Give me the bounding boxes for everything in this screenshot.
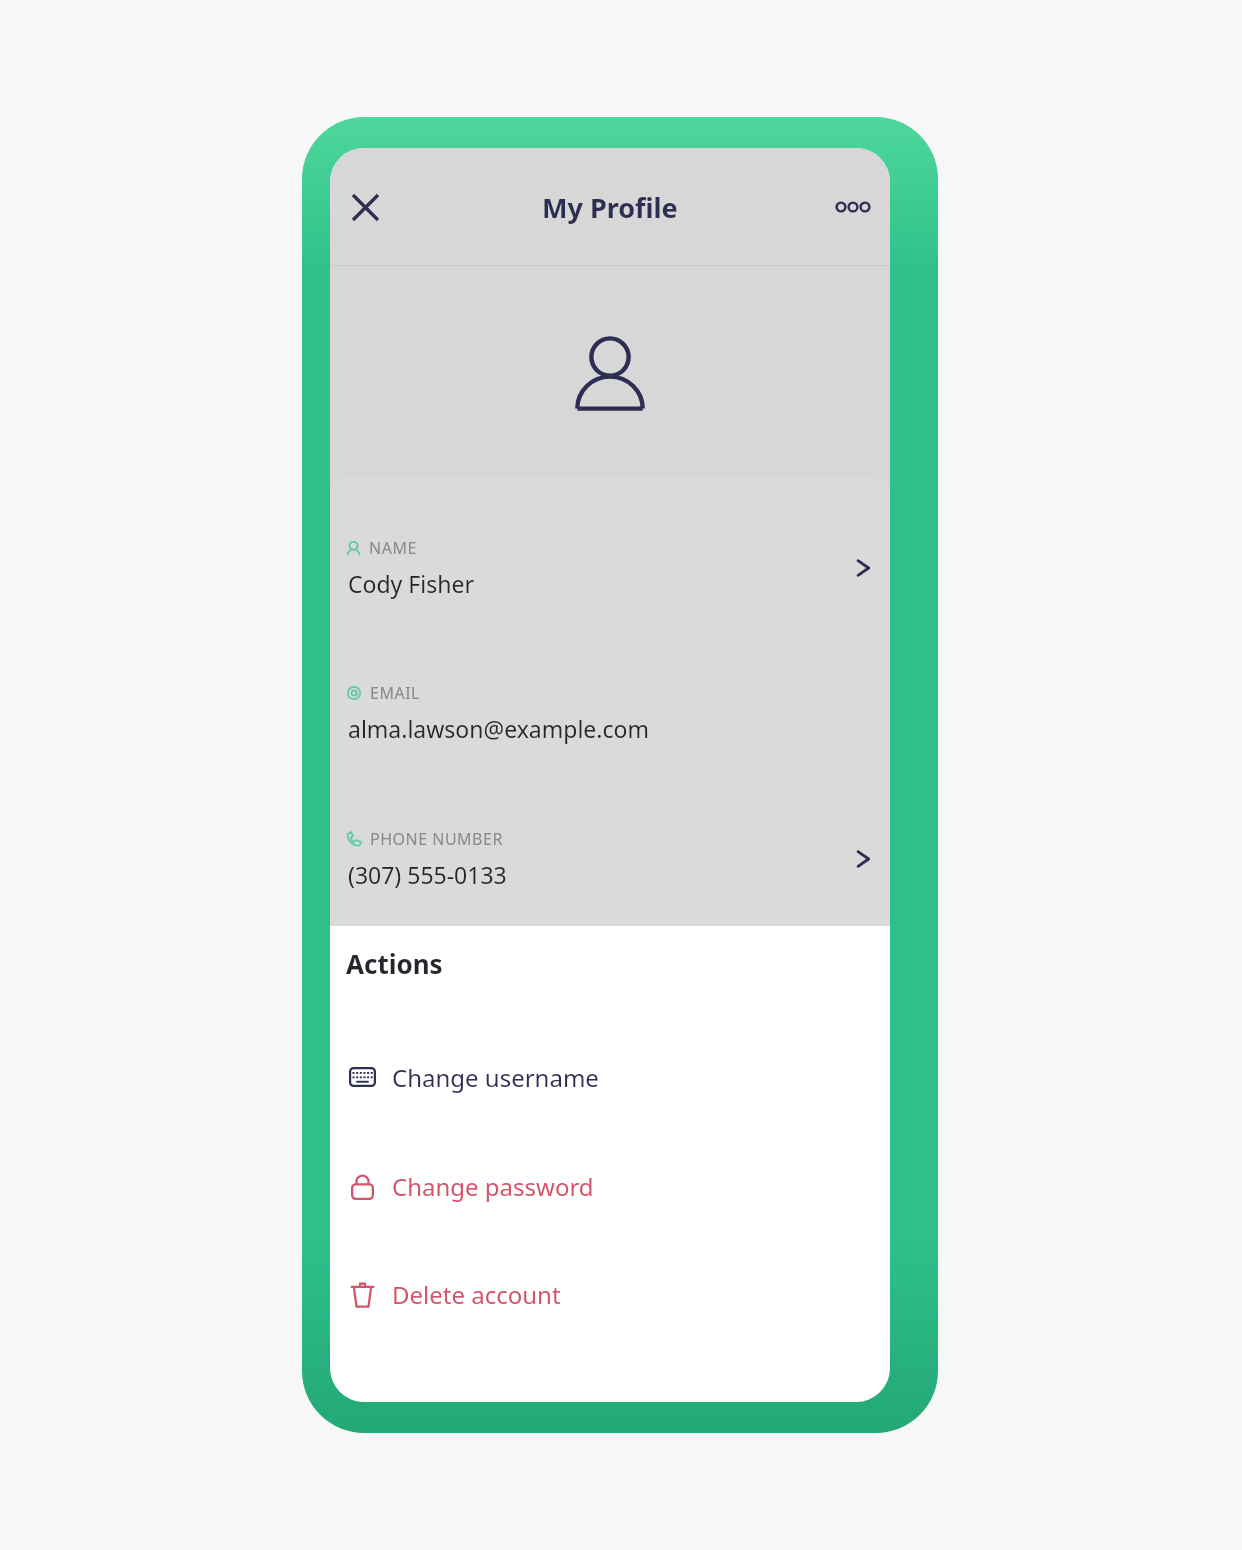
staticText: Change username [392, 1061, 599, 1094]
staticText: My Profile [542, 189, 678, 226]
staticText: NAME [369, 537, 417, 559]
staticText: EMAIL [370, 682, 420, 704]
button[interactable]: Close [336, 178, 394, 236]
button[interactable]: Change username [330, 1048, 890, 1106]
button[interactable]: EMAIL [330, 665, 890, 761]
button[interactable]: More options [824, 178, 882, 236]
staticText: (307) 555-0133 [348, 859, 507, 890]
staticText: Change password [392, 1170, 594, 1203]
button[interactable]: NAME [330, 520, 890, 616]
button[interactable]: PHONE NUMBER [330, 811, 890, 907]
button[interactable]: Change password [330, 1157, 890, 1215]
staticText: Actions [346, 946, 443, 981]
staticText: Cody Fisher [348, 568, 474, 599]
staticText: PHONE NUMBER [370, 828, 503, 850]
staticText: alma.lawson@example.com [348, 713, 649, 744]
button[interactable]: Delete account [330, 1265, 890, 1323]
staticText: Delete account [392, 1278, 561, 1311]
